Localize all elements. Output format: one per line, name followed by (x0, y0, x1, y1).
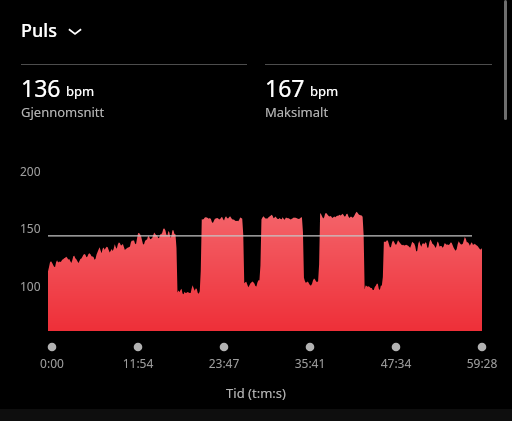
staticText: Tid (t:m:s) (0, 384, 512, 402)
staticText: bpm (66, 82, 95, 100)
other: Expand (66, 22, 84, 40)
staticText: 11:54 (108, 355, 168, 371)
staticText: 59:28 (452, 355, 512, 371)
staticText: 23:47 (194, 355, 254, 371)
staticText: 35:41 (280, 355, 340, 371)
staticText: Maksimalt (265, 103, 329, 121)
staticText: 47:34 (366, 355, 426, 371)
button[interactable]: 167 (265, 64, 492, 121)
staticText: bpm (310, 82, 339, 100)
staticText: Puls (21, 18, 57, 43)
staticText: 200 (20, 163, 41, 179)
staticText: Gjennomsnitt (21, 103, 105, 121)
staticText: 136 (21, 72, 61, 103)
staticText: 167 (265, 72, 305, 103)
staticText: 150 (20, 220, 41, 236)
button[interactable]: 136 (21, 64, 247, 121)
staticText: 0:00 (22, 355, 82, 371)
staticText: 100 (20, 278, 41, 294)
button[interactable]: Puls (21, 18, 84, 43)
